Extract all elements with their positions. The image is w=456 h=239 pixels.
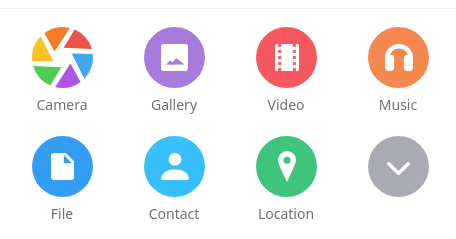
button[interactable]: File xyxy=(12,136,112,223)
staticText: File xyxy=(12,204,112,223)
button[interactable]: Collapse xyxy=(348,136,448,197)
button[interactable]: Location xyxy=(236,136,336,223)
button[interactable]: Video xyxy=(236,27,336,114)
staticText: Video xyxy=(236,95,336,114)
staticText: Contact xyxy=(124,204,224,223)
staticText: Location xyxy=(236,204,336,223)
button[interactable]: Contact xyxy=(124,136,224,223)
staticText: Music xyxy=(348,95,448,114)
staticText: Gallery xyxy=(124,95,224,114)
staticText: Camera xyxy=(12,95,112,114)
button[interactable]: Gallery xyxy=(124,27,224,114)
button[interactable]: Music xyxy=(348,27,448,114)
button[interactable]: Camera xyxy=(12,27,112,114)
